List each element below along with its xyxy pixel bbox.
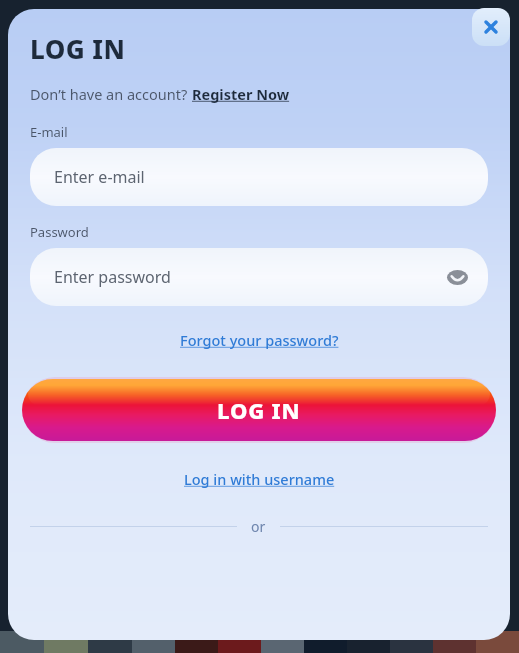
button[interactable]: Enter e-mail [30, 148, 488, 206]
staticText: Enter password [54, 266, 171, 288]
staticText: Log in with username [184, 469, 335, 489]
staticText: LOG IN [217, 395, 301, 425]
staticText: LOG IN [30, 31, 126, 66]
button[interactable]: Close [472, 8, 510, 46]
staticText: Password [30, 223, 89, 241]
staticText: Don’t have an account? [30, 84, 192, 104]
button[interactable]: Log in with username [8, 469, 510, 489]
button[interactable]: Show password [444, 264, 470, 290]
button[interactable]: LOG IN [22, 379, 496, 441]
staticText: Forgot your password? [180, 330, 339, 350]
staticText: Enter e-mail [54, 166, 145, 188]
button[interactable]: Enter password [30, 248, 488, 306]
staticText: Register Now [192, 84, 290, 104]
staticText: E-mail [30, 123, 68, 141]
button[interactable]: Forgot your password? [8, 330, 510, 350]
button[interactable]: Register Now [192, 84, 290, 104]
staticText: or [251, 517, 266, 536]
